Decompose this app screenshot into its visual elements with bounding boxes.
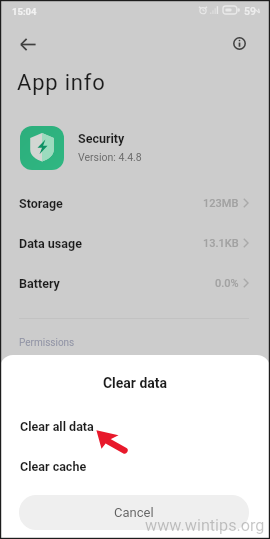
staticText: Data usage xyxy=(19,236,82,251)
button[interactable]: Clear all data xyxy=(0,406,270,446)
staticText: 0.0% xyxy=(215,277,239,290)
staticText: Cancel xyxy=(114,505,154,520)
staticText: Clear all data xyxy=(20,419,94,434)
button[interactable]: Battery xyxy=(0,263,270,303)
staticText: Battery xyxy=(19,276,60,291)
button[interactable]: Back xyxy=(13,32,43,56)
button[interactable]: Clear cache xyxy=(0,446,270,486)
staticText: Version: 4.4.8 xyxy=(78,151,142,163)
button[interactable]: Data usage xyxy=(0,223,270,263)
staticText: 15:04 xyxy=(12,6,37,17)
button[interactable]: Storage xyxy=(0,183,270,223)
staticText: Clear data xyxy=(0,375,270,391)
staticText: Permissions xyxy=(19,337,75,349)
button[interactable]: About this app xyxy=(226,30,253,57)
staticText: Clear cache xyxy=(20,459,87,474)
staticText: Storage xyxy=(19,196,63,211)
staticText: 123MB xyxy=(203,197,239,210)
staticText: www.wintips.org xyxy=(145,516,265,535)
staticText: 59 xyxy=(244,5,256,17)
staticText: App info xyxy=(17,70,106,96)
staticText: Security xyxy=(78,131,125,146)
button[interactable]: Cancel xyxy=(19,495,249,530)
staticText: 13.1KB xyxy=(203,237,239,250)
